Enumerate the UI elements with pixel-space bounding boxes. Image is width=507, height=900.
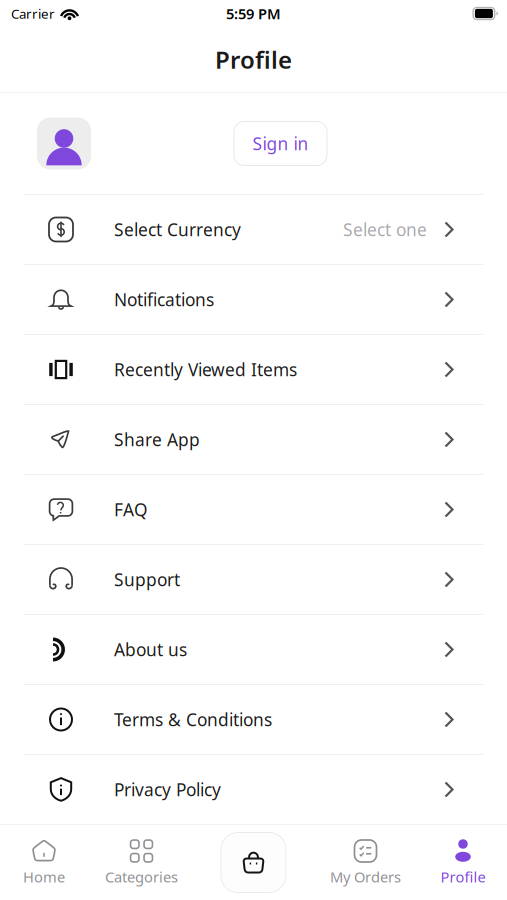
staticText: Select Currency [114, 218, 241, 241]
staticText: Categories [105, 867, 178, 886]
staticText: FAQ [114, 498, 148, 521]
button[interactable]: Support [0, 544, 507, 614]
staticText: Carrier [11, 5, 55, 22]
button[interactable]: Categories [88, 825, 195, 900]
staticText: Sign in [252, 132, 308, 155]
staticText: Profile [215, 44, 292, 75]
staticText: Support [114, 568, 180, 591]
staticText: My Orders [330, 867, 401, 886]
button[interactable]: Terms & Conditions [0, 684, 507, 754]
button[interactable]: Profile [419, 825, 507, 900]
button[interactable]: Share App [0, 404, 507, 474]
button[interactable]: My Orders [312, 825, 419, 900]
staticText: Share App [114, 428, 200, 451]
button[interactable]: Notifications [0, 264, 507, 334]
staticText: About us [114, 638, 187, 661]
staticText: Privacy Policy [114, 778, 221, 801]
staticText: 5:59 PM [226, 4, 281, 23]
staticText: Notifications [114, 288, 214, 311]
staticText: Home [23, 867, 65, 886]
staticText: Select one [343, 218, 427, 241]
button[interactable]: Sign in [234, 121, 327, 165]
staticText: Recently Viewed Items [114, 358, 297, 381]
staticText: Terms & Conditions [114, 708, 272, 731]
button[interactable]: Privacy Policy [0, 754, 507, 824]
button[interactable]: Recently Viewed Items [0, 334, 507, 404]
button[interactable]: Cart [221, 832, 286, 892]
button[interactable]: Select Currency [0, 194, 507, 264]
staticText: Profile [440, 867, 485, 886]
button[interactable]: About us [0, 614, 507, 684]
button[interactable]: Home [0, 825, 88, 900]
button[interactable]: FAQ [0, 474, 507, 544]
